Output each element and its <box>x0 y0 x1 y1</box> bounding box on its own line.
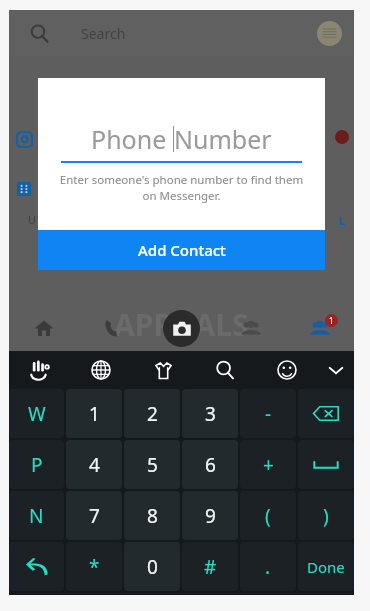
staticText: 1 <box>89 401 100 427</box>
button[interactable]: Keyboard settings <box>9 351 70 389</box>
button[interactable]: P <box>9 440 64 489</box>
button[interactable]: Done <box>298 542 354 591</box>
button[interactable]: 6 <box>182 440 238 489</box>
button[interactable]: Camera <box>147 305 216 351</box>
staticText: Number <box>174 122 272 156</box>
staticText: N <box>29 503 44 529</box>
staticText: Done <box>307 557 345 577</box>
staticText: Add Contact <box>138 240 226 260</box>
staticText: W <box>28 401 46 427</box>
button[interactable]: N <box>9 491 64 540</box>
button[interactable]: 4 <box>66 440 122 489</box>
staticText: Enter someone's phone number to find the… <box>56 172 307 203</box>
button[interactable]: Hide keyboard <box>318 351 354 389</box>
staticText: Phone <box>91 122 173 156</box>
button[interactable]: Profile <box>317 21 342 46</box>
staticText: 0 <box>147 554 158 580</box>
button[interactable]: Language <box>70 351 132 389</box>
staticText: 2 <box>147 401 158 427</box>
staticText: # <box>204 554 217 580</box>
staticText: U <box>28 212 37 227</box>
button[interactable]: ) <box>298 491 354 540</box>
staticText: APPUALS <box>114 304 249 345</box>
staticText: 5 <box>147 452 158 478</box>
button[interactable]: Add Contact <box>38 230 325 270</box>
staticText: * <box>89 554 100 580</box>
button[interactable]: Search <box>23 17 55 49</box>
button[interactable]: Backspace <box>298 389 354 438</box>
button[interactable]: Emoji <box>256 351 318 389</box>
staticText: 1 <box>329 315 334 326</box>
button[interactable]: 5 <box>124 440 180 489</box>
button[interactable]: Themes <box>132 351 194 389</box>
staticText: 3 <box>205 401 216 427</box>
staticText: + <box>263 452 274 478</box>
staticText: - <box>265 401 272 427</box>
staticText: P <box>31 452 43 478</box>
button[interactable]: . <box>240 542 296 591</box>
button[interactable]: Search <box>194 351 256 389</box>
button[interactable]: # <box>182 542 238 591</box>
button[interactable]: Space <box>298 440 354 489</box>
button[interactable]: People <box>216 305 285 351</box>
button[interactable]: 2 <box>124 389 180 438</box>
staticText: L <box>339 213 346 228</box>
button[interactable]: 3 <box>182 389 238 438</box>
button[interactable]: W <box>9 389 64 438</box>
button[interactable]: 1 <box>66 389 122 438</box>
staticText: 6 <box>205 452 216 478</box>
button[interactable]: Contacts <box>285 305 354 351</box>
button[interactable]: Enter <box>9 542 64 591</box>
staticText: 8 <box>147 503 158 529</box>
button[interactable]: 7 <box>66 491 122 540</box>
button[interactable]: 9 <box>182 491 238 540</box>
button[interactable]: - <box>240 389 296 438</box>
staticText: 4 <box>89 452 100 478</box>
staticText: Search <box>81 24 126 43</box>
button[interactable]: ( <box>240 491 296 540</box>
staticText: 9 <box>205 503 216 529</box>
button[interactable]: 8 <box>124 491 180 540</box>
staticText: . <box>265 554 271 580</box>
button[interactable]: 0 <box>124 542 180 591</box>
staticText: ( <box>265 503 271 529</box>
button[interactable]: Home <box>9 305 78 351</box>
button[interactable]: * <box>66 542 122 591</box>
button[interactable]: Calls <box>78 305 147 351</box>
staticText: ) <box>323 503 329 529</box>
staticText: 7 <box>89 503 100 529</box>
button[interactable]: + <box>240 440 296 489</box>
